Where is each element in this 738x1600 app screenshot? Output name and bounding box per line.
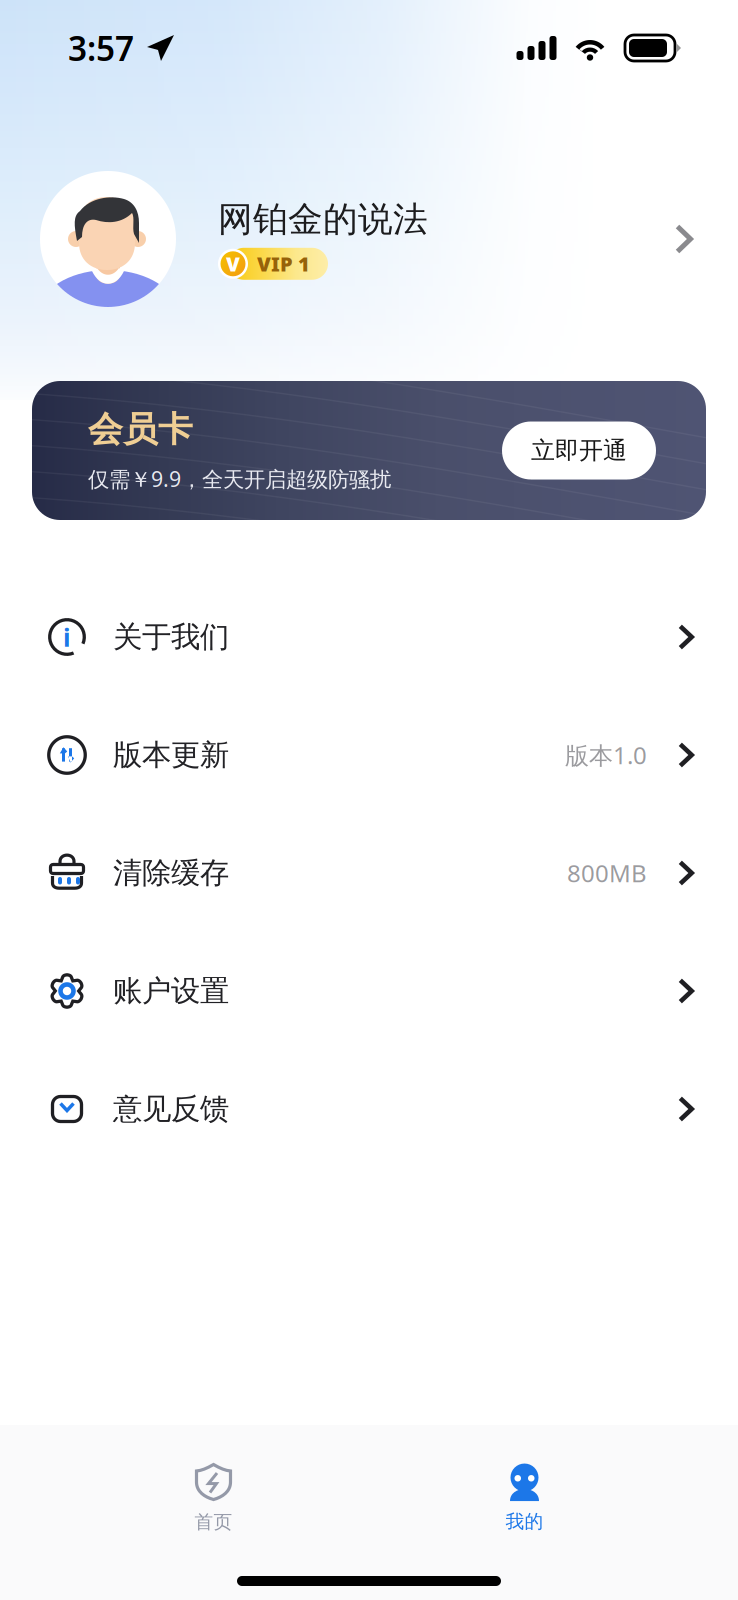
staticText: i <box>63 620 71 654</box>
staticText: 我的 <box>505 1510 543 1533</box>
button[interactable]: 清除缓存 <box>0 814 738 932</box>
staticText: VIP 1 <box>257 250 310 277</box>
button[interactable]: 我的 <box>369 1453 680 1543</box>
staticText: 账户设置 <box>113 973 229 1009</box>
staticText: V <box>226 250 240 277</box>
button[interactable]: 意见反馈 <box>0 1050 738 1168</box>
button[interactable]: 首页 <box>58 1453 369 1543</box>
staticText: 首页 <box>194 1510 232 1533</box>
button[interactable]: i <box>0 578 738 696</box>
staticText: 版本1.0 <box>565 739 647 771</box>
staticText: 3:57 <box>68 26 134 70</box>
staticText: 立即开通 <box>531 436 627 465</box>
button[interactable]: 网铂金的说法 <box>0 164 738 314</box>
button[interactable]: 账户设置 <box>0 932 738 1050</box>
staticText: 版本更新 <box>113 737 229 773</box>
staticText: 意见反馈 <box>113 1091 229 1127</box>
button[interactable]: 立即开通 <box>502 421 656 479</box>
staticText: 网铂金的说法 <box>218 198 428 241</box>
staticText: 会员卡 <box>88 408 193 451</box>
staticText: 关于我们 <box>113 619 229 655</box>
staticText: 清除缓存 <box>113 855 229 891</box>
staticText: 仅需￥9.9，全天开启超级防骚扰 <box>88 465 391 493</box>
button[interactable]: 版本更新 <box>0 696 738 814</box>
staticText: 800MB <box>567 857 647 889</box>
